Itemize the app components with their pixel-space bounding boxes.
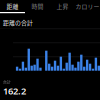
staticText: 距離の合計	[3, 18, 33, 27]
staticText: 距離	[6, 2, 18, 10]
button[interactable]: カロリー	[75, 2, 100, 13]
button[interactable]: 上昇	[50, 2, 75, 13]
staticText: 合計	[3, 80, 11, 85]
staticText: 上昇	[56, 2, 68, 10]
button[interactable]: 時間	[25, 2, 50, 13]
staticText: カロリー	[75, 2, 99, 10]
staticText: 162.2	[3, 85, 26, 97]
staticText: 時間	[31, 2, 43, 10]
button[interactable]: 距離	[0, 2, 25, 13]
